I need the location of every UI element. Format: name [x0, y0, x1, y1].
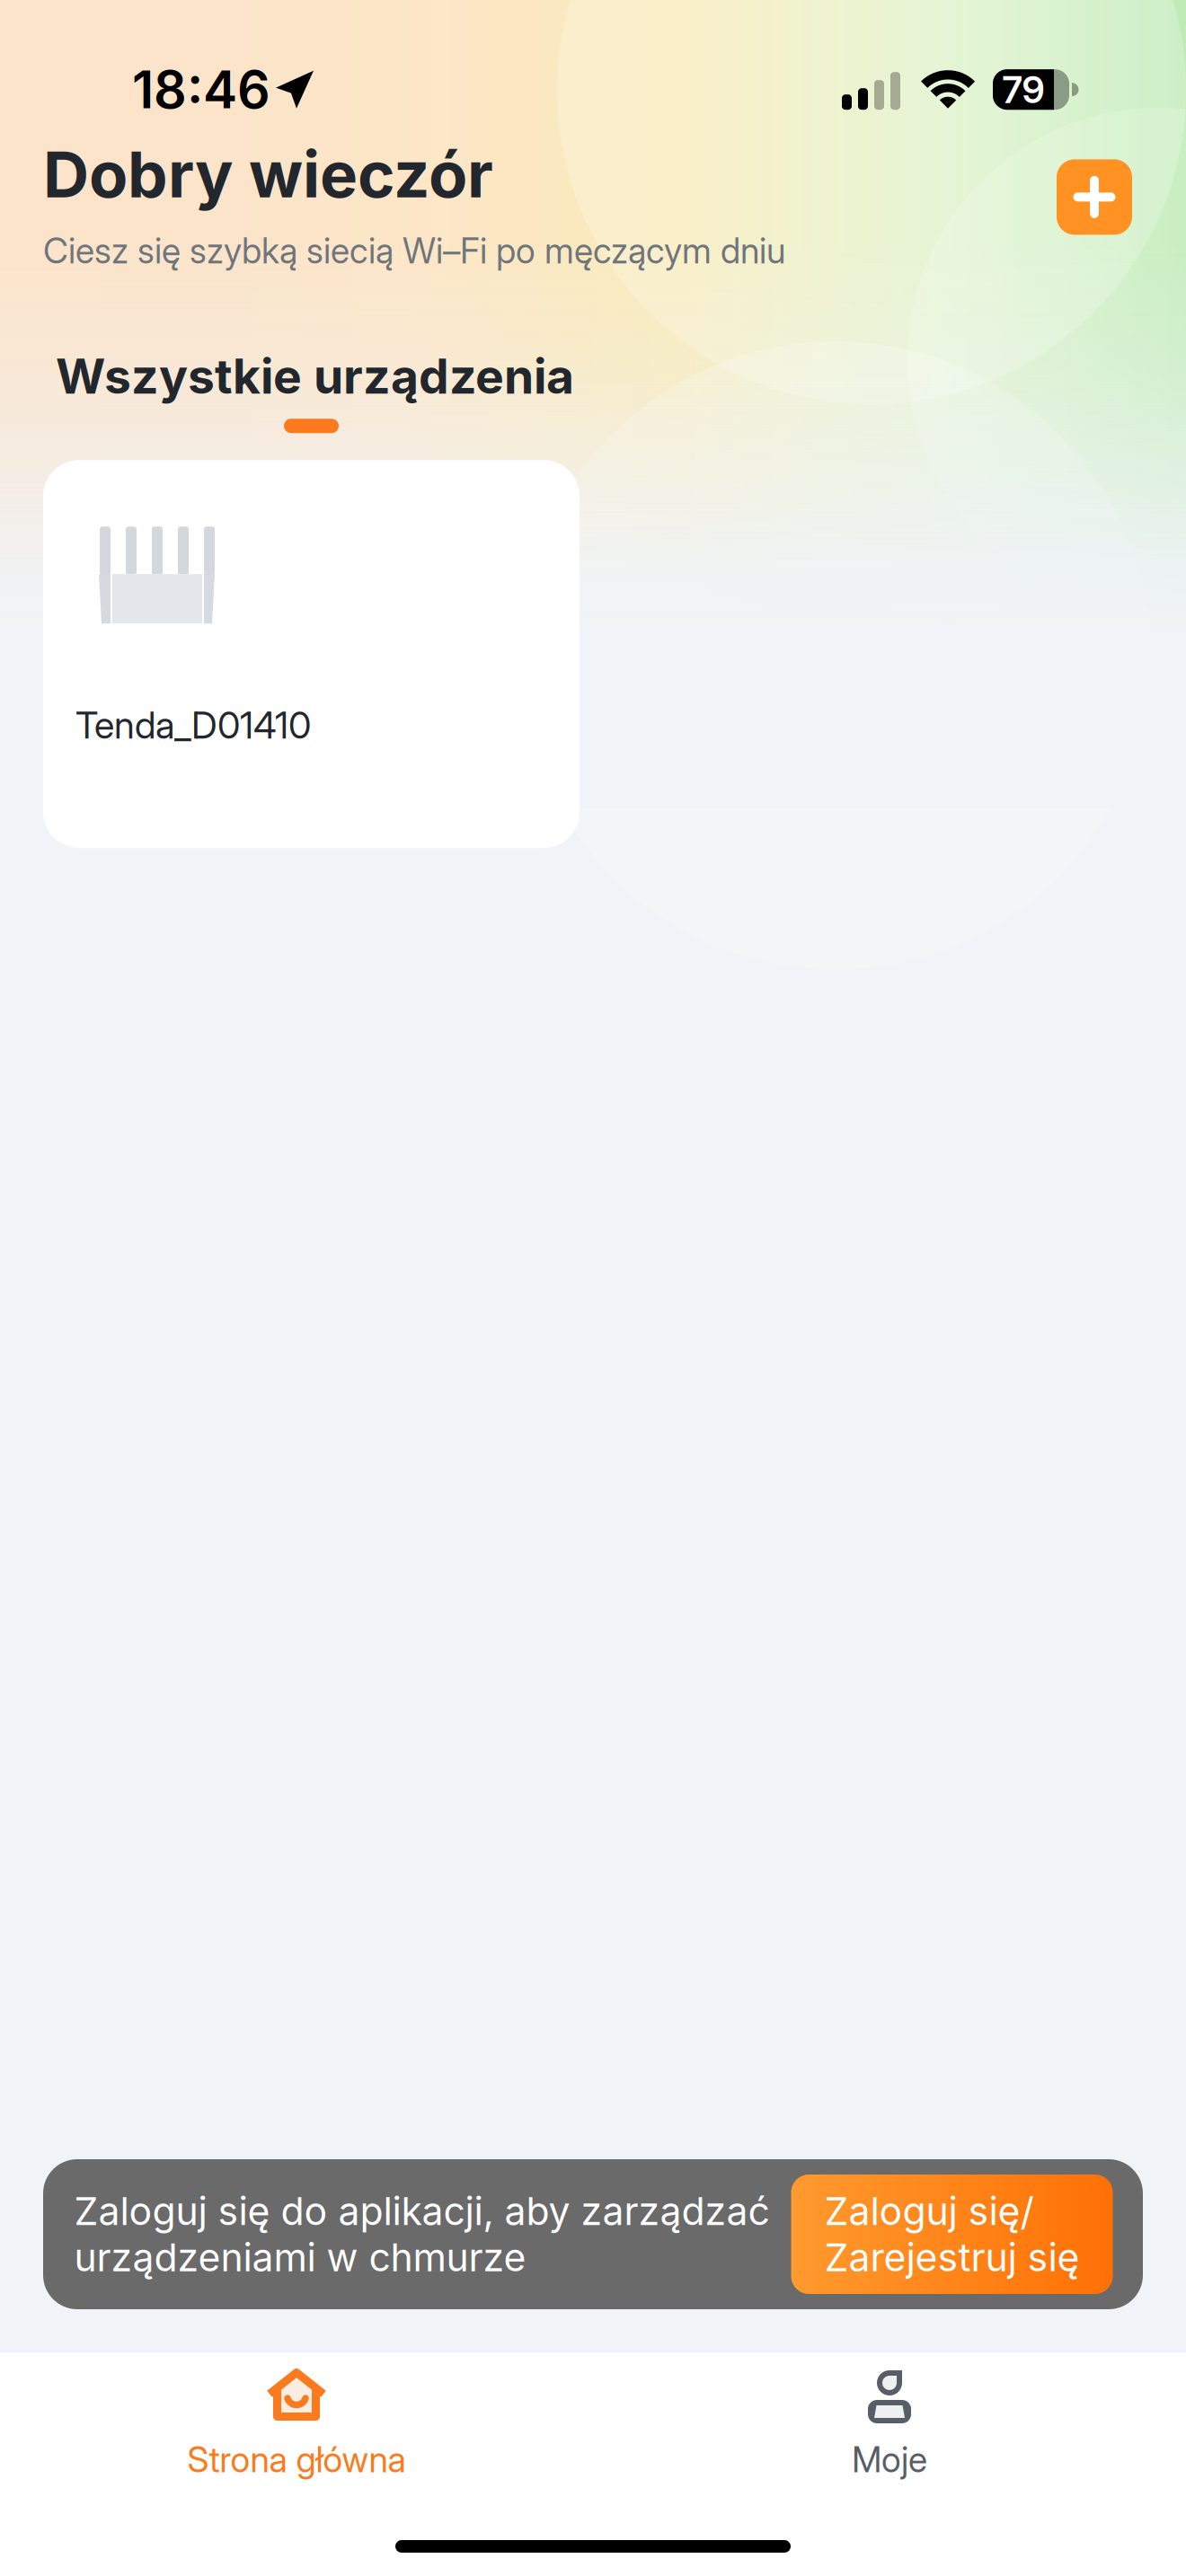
button[interactable]: Add device	[1057, 159, 1132, 235]
staticText: Dobry wieczór	[43, 136, 493, 213]
button[interactable]: Wszystkie urządzenia	[56, 347, 574, 433]
staticText: Moje	[852, 2439, 927, 2481]
staticText: 79	[1002, 67, 1044, 112]
staticText: Zaloguj się do aplikacji, aby zarządzać …	[74, 2188, 770, 2281]
staticText: Ciesz się szybką siecią Wi–Fi po męczący…	[43, 230, 785, 272]
staticText: Tenda_D01410	[75, 703, 311, 747]
staticText: Wszystkie urządzenia	[56, 347, 574, 405]
staticText: 18:46	[132, 58, 270, 121]
button[interactable]: Tenda_D01410	[43, 460, 580, 848]
button[interactable]: Zaloguj się do aplikacji, aby zarządzać …	[43, 2159, 1143, 2309]
button[interactable]: Strona główna	[0, 2352, 593, 2576]
staticText: Strona główna	[187, 2439, 406, 2481]
button[interactable]: Moje	[593, 2352, 1186, 2576]
staticText: Zaloguj się/ Zarejestruj się	[824, 2188, 1080, 2281]
